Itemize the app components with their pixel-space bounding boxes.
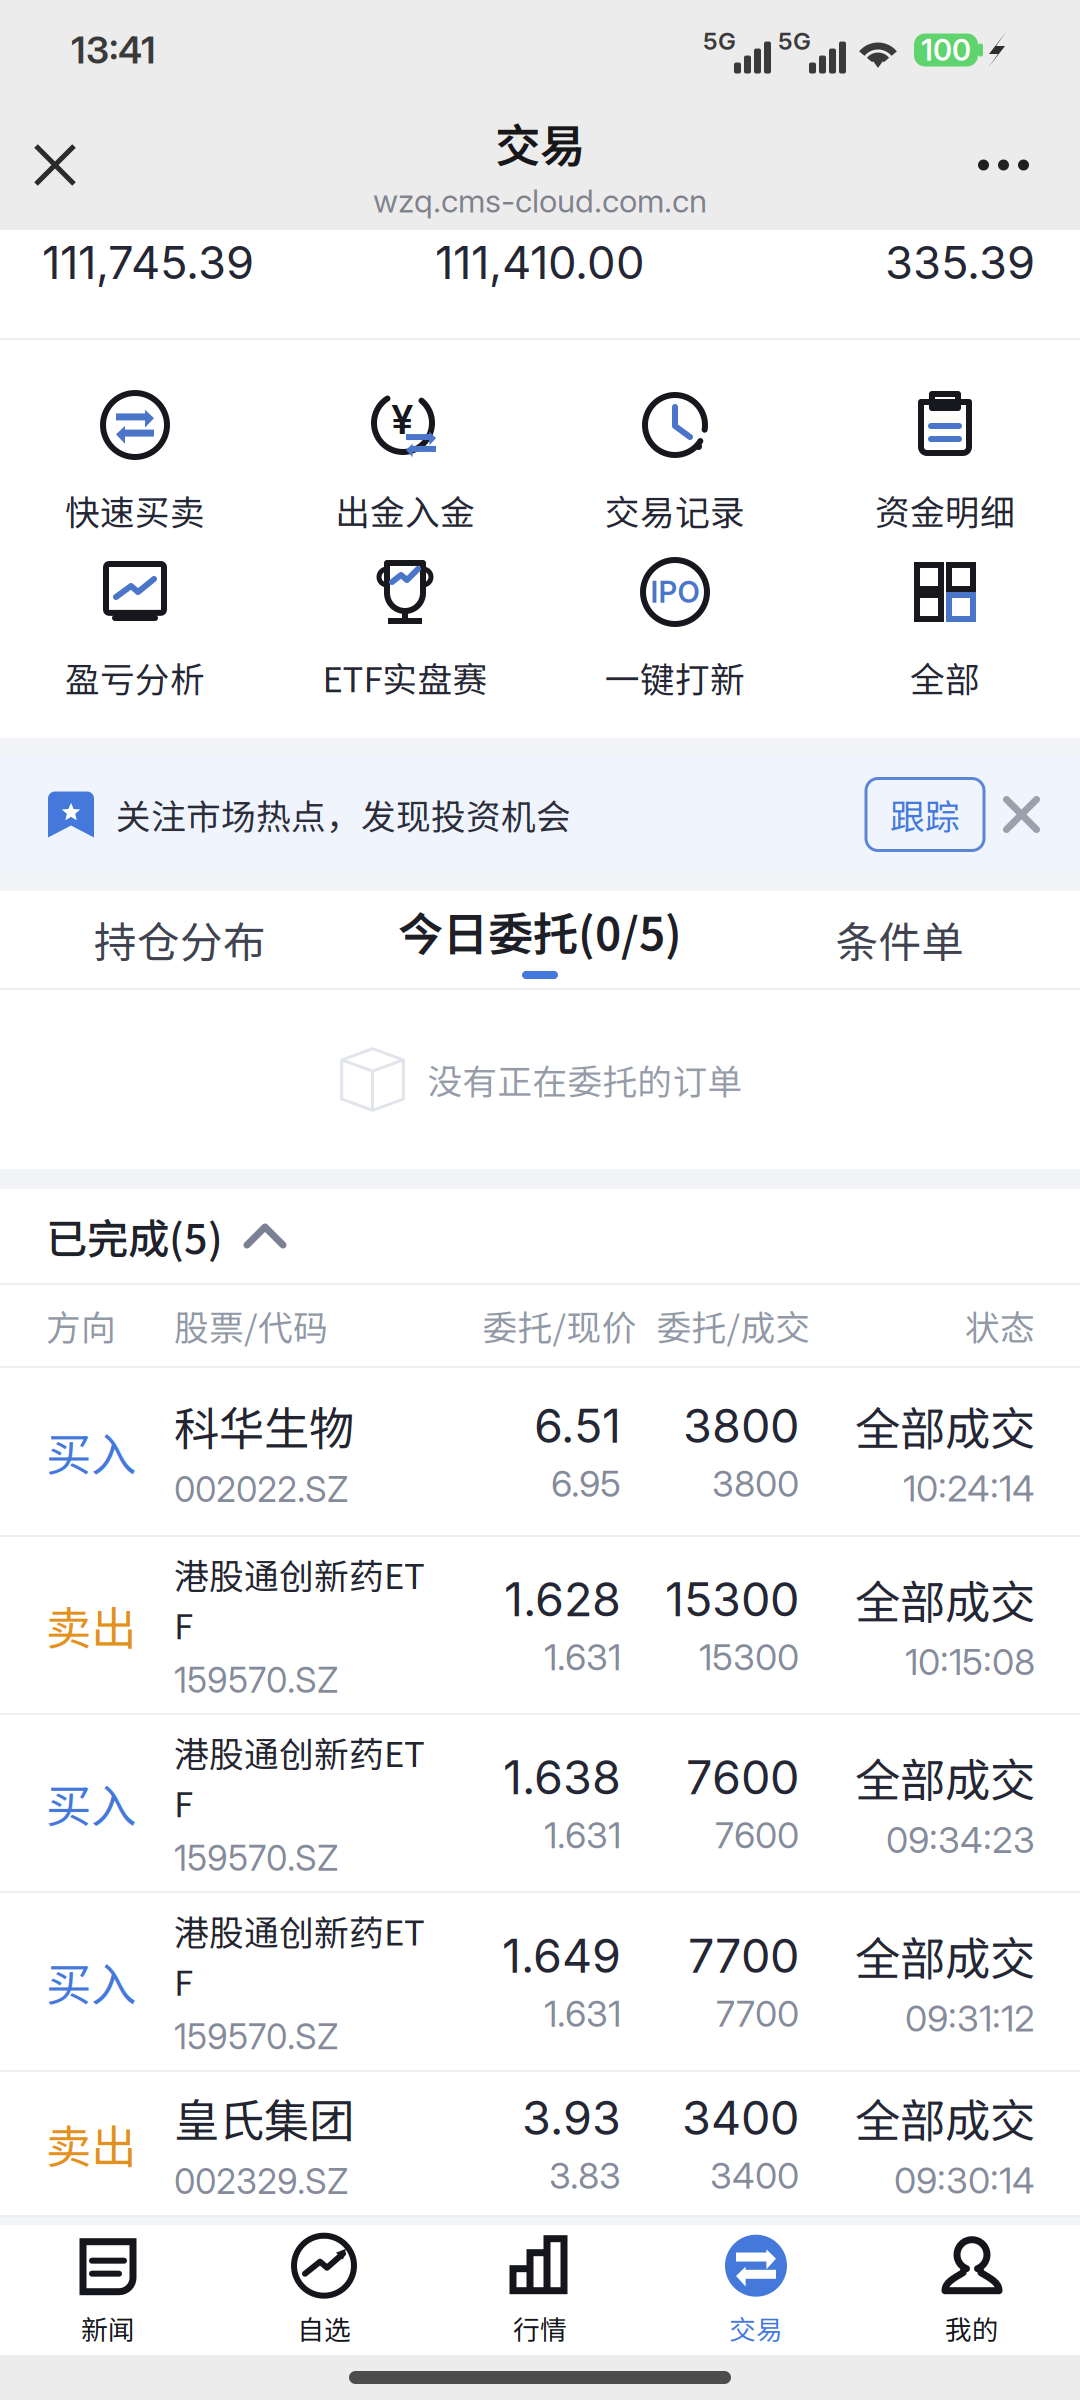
staticText: 全部: [910, 652, 980, 702]
staticText: 159570.SZ: [174, 1659, 338, 1701]
staticText: 159570.SZ: [174, 2016, 338, 2058]
button[interactable]: 条件单: [720, 891, 1080, 988]
staticText: 6.95: [551, 1462, 621, 1506]
staticText: 111,410.00: [435, 235, 645, 290]
staticText: 100: [921, 32, 971, 68]
staticText: 1.631: [544, 1813, 621, 1857]
button[interactable]: 跟踪: [866, 778, 984, 850]
staticText: 关注市场热点，发现投资机会: [116, 789, 571, 840]
staticText: 卖出: [46, 2111, 136, 2176]
staticText: 15300: [665, 1571, 799, 1627]
button[interactable]: 全部: [810, 559, 1080, 726]
button[interactable]: ETF实盘赛: [270, 559, 540, 726]
button[interactable]: 行情: [432, 2225, 648, 2355]
staticText: 没有正在委托的订单: [427, 1054, 742, 1105]
staticText: 1.628: [504, 1571, 621, 1627]
staticText: 跟踪: [890, 789, 960, 840]
staticText: 卖出: [46, 1592, 136, 1658]
button[interactable]: 买入: [0, 1893, 1080, 2070]
staticText: 委托/成交: [656, 1300, 810, 1351]
staticText: 5G: [778, 26, 811, 55]
staticText: 6.51: [534, 1397, 621, 1454]
staticText: 10:24:14: [903, 1466, 1035, 1510]
staticText: 交易: [495, 110, 585, 175]
staticText: 全部成交: [855, 2085, 1035, 2150]
button[interactable]: 盈亏分析: [0, 559, 270, 726]
staticText: 002329.SZ: [174, 2160, 348, 2202]
staticText: 状态: [965, 1300, 1035, 1351]
button[interactable]: 交易: [648, 2225, 864, 2355]
staticText: IPO: [650, 574, 699, 610]
staticText: 09:30:14: [894, 2158, 1035, 2202]
staticText: 3800: [712, 1462, 799, 1506]
button[interactable]: ¥: [270, 392, 540, 559]
button[interactable]: Dismiss banner: [984, 777, 1059, 852]
button[interactable]: 买入: [0, 1368, 1080, 1535]
button[interactable]: 已完成(5): [0, 1189, 1080, 1283]
staticText: 持仓分布: [94, 909, 266, 970]
staticText: 159570.SZ: [174, 1837, 338, 1879]
staticText: 1.638: [503, 1749, 621, 1805]
staticText: 方向: [46, 1300, 116, 1351]
staticText: 全部成交: [855, 1566, 1035, 1632]
staticText: 条件单: [835, 909, 964, 970]
staticText: 7700: [716, 1992, 799, 2036]
button[interactable]: IPO: [540, 559, 810, 726]
button[interactable]: 今日委托(0/5): [360, 891, 720, 988]
staticText: 快速买卖: [65, 485, 205, 535]
button[interactable]: 持仓分布: [0, 891, 360, 988]
staticText: F: [174, 1955, 193, 2006]
button[interactable]: 自选: [216, 2225, 432, 2355]
staticText: 13:41: [71, 27, 156, 73]
button[interactable]: 资金明细: [810, 392, 1080, 559]
staticText: 港股通创新药ET: [174, 1727, 425, 1777]
button[interactable]: 快速买卖: [0, 392, 270, 559]
staticText: 1.649: [502, 1927, 621, 1984]
staticText: 09:31:12: [905, 1996, 1035, 2040]
staticText: 交易记录: [605, 485, 745, 535]
staticText: 全部成交: [855, 1744, 1035, 1810]
staticText: 港股通创新药ET: [174, 1905, 425, 1955]
staticText: ETF实盘赛: [322, 652, 487, 702]
staticText: 新闻: [81, 2309, 135, 2347]
button[interactable]: 我的: [864, 2225, 1080, 2355]
button[interactable]: Close: [5, 115, 105, 215]
staticText: F: [174, 1777, 193, 1827]
staticText: 5G: [703, 26, 736, 55]
staticText: 委托/现价: [482, 1300, 636, 1351]
staticText: 335.39: [885, 235, 1035, 290]
staticText: ¥: [391, 395, 413, 444]
staticText: 自选: [297, 2309, 351, 2347]
staticText: 皇氏集团: [174, 2085, 354, 2150]
staticText: 3800: [683, 1397, 799, 1454]
staticText: 1.631: [544, 1992, 621, 2036]
staticText: 15300: [699, 1635, 799, 1679]
staticText: 3.83: [549, 2154, 621, 2198]
staticText: 港股通创新药ET: [174, 1549, 425, 1599]
staticText: 我的: [945, 2309, 999, 2347]
button[interactable]: 卖出: [0, 1537, 1080, 1713]
staticText: 买入: [46, 1949, 136, 2014]
button[interactable]: More options: [952, 115, 1055, 215]
staticText: 7600: [715, 1813, 799, 1857]
button[interactable]: 买入: [0, 1715, 1080, 1891]
staticText: 3400: [682, 2089, 799, 2146]
staticText: 7700: [688, 1927, 799, 1984]
staticText: 买入: [46, 1419, 136, 1484]
staticText: 行情: [513, 2309, 567, 2347]
staticText: 股票/代码: [174, 1300, 328, 1351]
staticText: 全部成交: [855, 1923, 1035, 1988]
button[interactable]: 卖出: [0, 2072, 1080, 2215]
button[interactable]: 交易记录: [540, 392, 810, 559]
staticText: 10:15:08: [905, 1640, 1035, 1684]
staticText: 出金入金: [335, 485, 475, 535]
staticText: 今日委托(0/5): [398, 898, 682, 964]
staticText: 科华生物: [174, 1393, 354, 1458]
button[interactable]: 新闻: [0, 2225, 216, 2355]
staticText: 资金明细: [875, 485, 1015, 535]
staticText: wzq.cms-cloud.com.cn: [373, 181, 707, 220]
staticText: 买入: [46, 1770, 136, 1836]
staticText: 一键打新: [605, 652, 745, 702]
staticText: 09:34:23: [886, 1818, 1035, 1862]
staticText: 全部成交: [855, 1393, 1035, 1458]
